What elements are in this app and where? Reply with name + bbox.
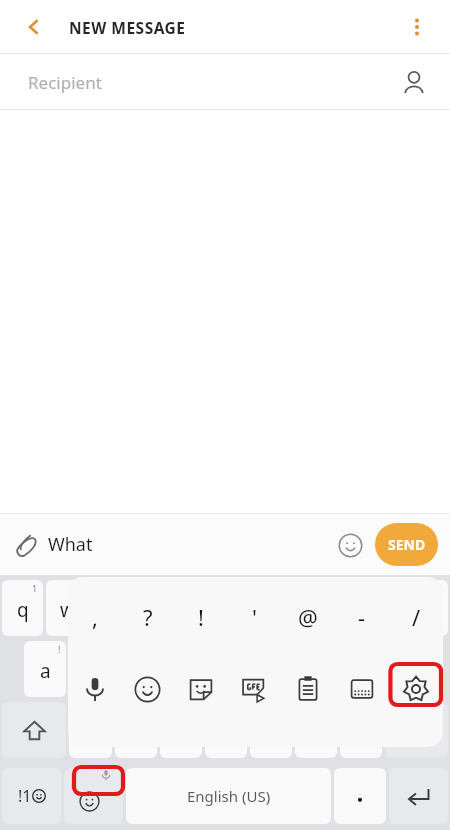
staticText: 1 — [32, 582, 38, 594]
button[interactable]: Insert emoji — [330, 525, 370, 565]
button[interactable]: ' — [227, 577, 281, 657]
staticText: t — [199, 597, 206, 623]
button[interactable]: - — [335, 577, 389, 657]
button[interactable]: g — [204, 641, 246, 697]
staticText: j — [313, 658, 318, 684]
button[interactable]: r — [136, 580, 178, 636]
button[interactable]: t — [181, 580, 223, 636]
button[interactable]: ! — [174, 577, 227, 657]
staticText: NEW MESSAGE — [69, 17, 186, 38]
button[interactable]: q — [2, 580, 43, 636]
button[interactable]: GIF — [227, 659, 281, 719]
button[interactable]: u — [271, 580, 313, 636]
button[interactable]: s — [69, 641, 111, 697]
staticText: ? — [143, 602, 153, 632]
button[interactable]: Keyboard settings — [389, 659, 443, 719]
staticText: !1 — [18, 785, 32, 807]
button[interactable]: f — [159, 641, 201, 697]
staticText: , — [92, 602, 98, 632]
button[interactable]: Back — [16, 9, 52, 45]
button[interactable]: English (US) — [126, 768, 331, 824]
staticText: ! — [58, 643, 61, 655]
button[interactable]: / — [389, 577, 443, 657]
staticText: - — [358, 602, 366, 632]
button[interactable]: Recipient — [0, 54, 450, 110]
staticText: ' — [252, 602, 257, 632]
button[interactable]: h — [249, 641, 291, 697]
button[interactable]: ? — [121, 577, 174, 657]
button[interactable]: k — [339, 641, 381, 697]
button[interactable]: y — [226, 580, 268, 636]
button[interactable]: j — [294, 641, 336, 697]
staticText: s — [85, 658, 95, 684]
button[interactable]: SEND — [375, 523, 438, 566]
staticText: h — [264, 658, 276, 684]
button[interactable]: o — [361, 580, 403, 636]
staticText: SEND — [388, 535, 426, 554]
button[interactable]: d — [114, 641, 156, 697]
button[interactable]: x — [115, 702, 157, 758]
button[interactable]: Shift — [2, 702, 66, 758]
button[interactable]: w — [46, 580, 88, 636]
button[interactable]: Clipboard — [281, 659, 335, 719]
button[interactable]: Keyboard layout — [335, 659, 389, 719]
staticText: What — [48, 532, 93, 557]
button[interactable]: @ — [281, 577, 335, 657]
staticText: w — [60, 597, 75, 623]
button[interactable]: , — [68, 577, 121, 657]
button[interactable]: b — [250, 702, 292, 758]
staticText: l — [403, 658, 408, 684]
button[interactable]: l — [384, 641, 426, 697]
button[interactable]: Emoji — [121, 659, 174, 719]
button[interactable]: Stickers — [174, 659, 227, 719]
button[interactable]: p — [406, 580, 448, 636]
button[interactable]: Voice input — [68, 659, 121, 719]
staticText: @ — [298, 602, 318, 632]
button[interactable]: Emoji and voice input — [64, 768, 123, 824]
button[interactable]: Add recipient — [394, 62, 434, 102]
button[interactable]: Symbols — [2, 768, 61, 824]
button[interactable]: More options — [398, 8, 436, 46]
button[interactable]: Delete — [385, 702, 448, 758]
button[interactable]: Attach file — [6, 523, 48, 565]
button[interactable]: Enter — [389, 768, 448, 824]
button[interactable]: e — [91, 580, 133, 636]
button[interactable]: Period — [334, 768, 386, 824]
button[interactable]: a — [24, 641, 66, 697]
staticText: / — [412, 602, 421, 632]
staticText: q — [17, 597, 29, 623]
